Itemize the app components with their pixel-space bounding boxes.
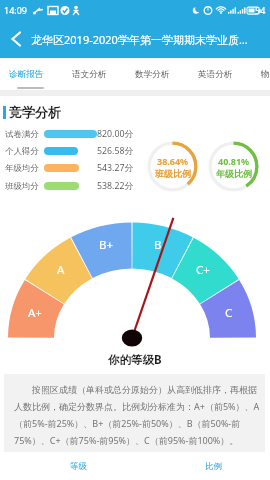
staticText: 班级比例 bbox=[155, 168, 191, 179]
button[interactable]: 英语分析 bbox=[184, 58, 247, 90]
staticText: A+ bbox=[28, 305, 42, 321]
staticText: 你的等级B bbox=[108, 352, 162, 368]
staticText: 诊断报告 bbox=[9, 69, 44, 80]
staticText: 538.22分 bbox=[97, 180, 134, 192]
staticText: 40.81% bbox=[218, 155, 250, 167]
staticText: 按照区成绩（单科或总分原始分）从高到低排序，再根据人数比例，确定分数界点。比例划… bbox=[14, 383, 265, 447]
staticText: B bbox=[154, 237, 162, 253]
staticText: 语文分析 bbox=[72, 69, 107, 80]
staticText: 38.64% bbox=[157, 155, 189, 167]
staticText: 820.00分 bbox=[97, 128, 134, 140]
staticText: 年级均分 bbox=[5, 163, 39, 174]
staticText: 比例 bbox=[205, 461, 222, 472]
staticText: 英语分析 bbox=[198, 69, 233, 80]
staticText: C+ bbox=[196, 262, 210, 278]
staticText: 等级 bbox=[70, 461, 87, 472]
staticText: 数学分析 bbox=[135, 69, 170, 80]
staticText: C bbox=[225, 305, 233, 321]
staticText: 526.58分 bbox=[97, 145, 134, 157]
button[interactable]: Back bbox=[0, 20, 31, 58]
button[interactable]: 诊断报告 bbox=[0, 58, 58, 90]
staticText: 龙华区2019-2020学年第一学期期末学业质… bbox=[31, 32, 270, 47]
button[interactable]: 语文分析 bbox=[58, 58, 121, 90]
button[interactable]: 等级 bbox=[0, 453, 156, 480]
button[interactable]: 数学分析 bbox=[121, 58, 184, 90]
staticText: 14:09 bbox=[4, 4, 28, 16]
button[interactable]: 比例 bbox=[156, 453, 270, 480]
staticText: 543.27分 bbox=[97, 162, 134, 174]
staticText: 年级比例 bbox=[216, 168, 252, 179]
staticText: 竞学分析 bbox=[9, 104, 61, 120]
staticText: 试卷满分 bbox=[5, 129, 39, 140]
staticText: 54 bbox=[255, 4, 266, 16]
staticText: B+ bbox=[99, 237, 114, 253]
staticText: 班级均分 bbox=[5, 181, 39, 192]
button[interactable]: 物 bbox=[247, 58, 265, 90]
staticText: 个人得分 bbox=[5, 146, 39, 157]
staticText: A bbox=[57, 262, 65, 278]
